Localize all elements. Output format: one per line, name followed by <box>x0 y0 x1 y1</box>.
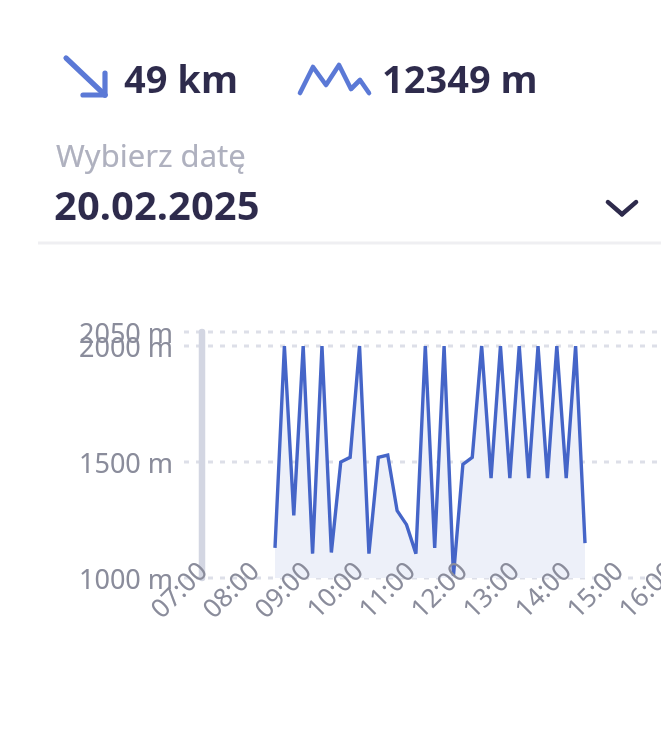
button[interactable]: Wybierz datę 20.02.2025, zmień datę <box>0 132 661 232</box>
